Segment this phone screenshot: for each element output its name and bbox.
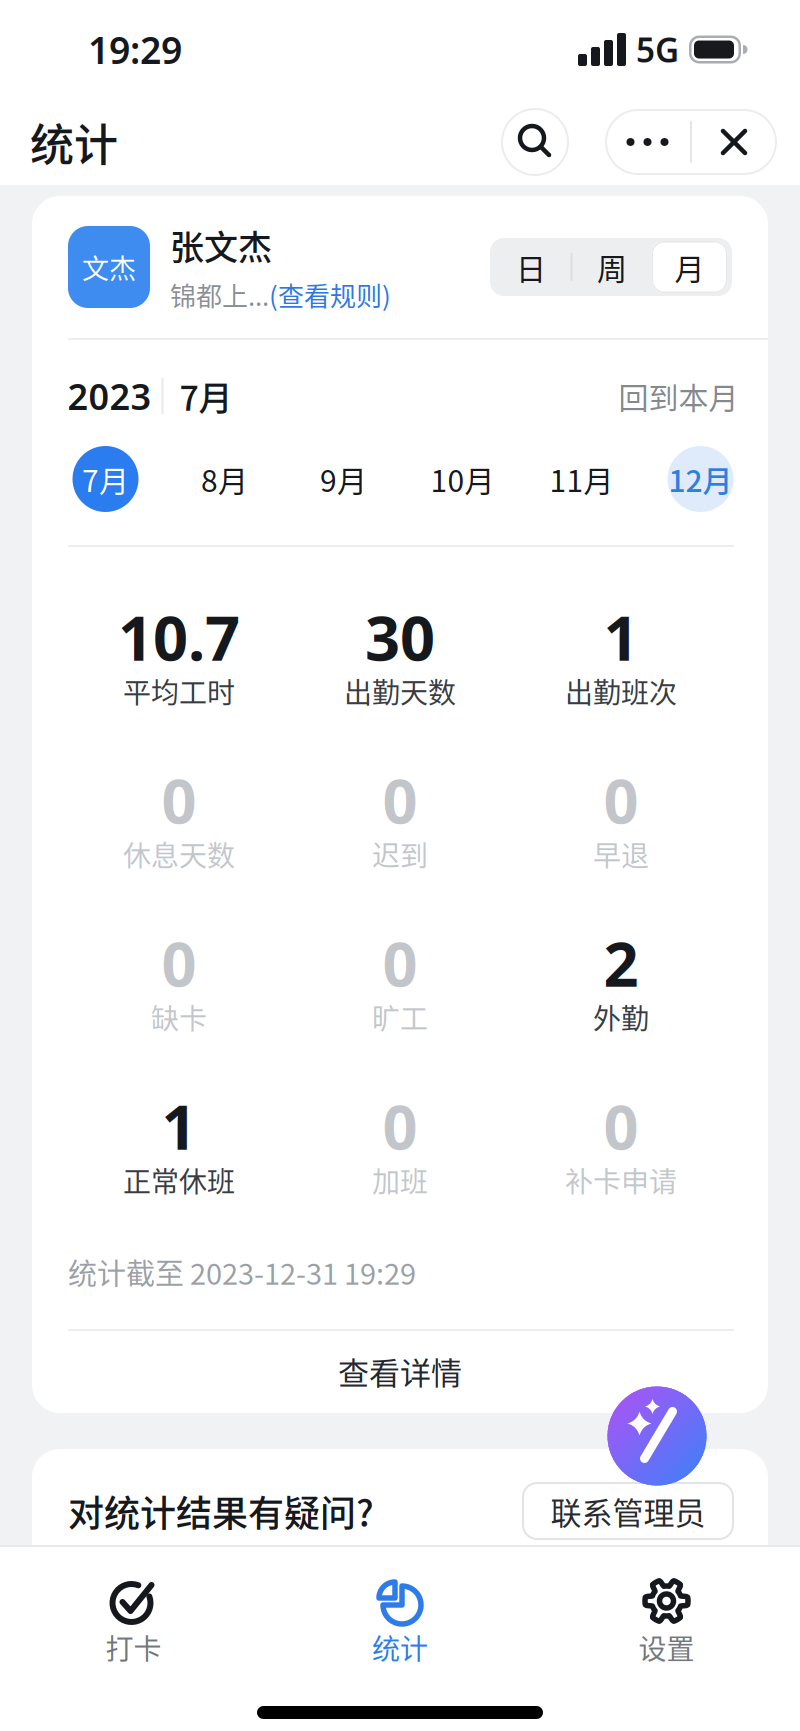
button[interactable]: 回到本月 [618,374,738,418]
button[interactable]: 统计 [266,1547,533,1677]
staticText: 统计 [30,110,118,174]
button[interactable]: (查看规则) [269,276,391,313]
staticText: 打卡 [105,1627,161,1667]
staticText: 2 [603,922,638,1004]
staticText: 8月 [201,457,248,501]
staticText: 外勤 [593,997,649,1037]
staticText: 0 [161,922,196,1004]
staticText: 12月 [668,457,732,501]
staticText: 10月 [430,457,494,501]
staticText: 30 [365,596,435,678]
button[interactable]: 设置 [533,1547,799,1677]
staticText: 9月 [320,457,367,501]
staticText: 出勤班次 [565,671,677,711]
staticText: 0 [603,759,638,841]
button[interactable]: 更多 [605,109,690,175]
button[interactable]: 周 [572,238,651,296]
staticText: 0 [382,1085,417,1167]
staticText: 0 [161,759,196,841]
staticText: 1 [603,596,638,678]
button[interactable]: 联系管理员 [522,1482,734,1540]
staticText: 7月 [82,457,129,501]
staticText: 休息天数 [123,834,235,874]
button[interactable]: 智能助理 [607,1386,706,1485]
button[interactable]: 11月 [548,446,614,512]
staticText: 0 [603,1085,638,1167]
staticText: 锦都上... [170,276,269,313]
staticText: 月 [674,245,704,289]
staticText: 0 [382,759,417,841]
staticText: 2023 [67,372,151,420]
staticText: 11月 [549,457,613,501]
staticText: 对统计结果有疑问? [68,1485,374,1537]
button[interactable]: 关闭 [692,109,777,175]
staticText: 1 [161,1085,196,1167]
button[interactable]: 10月 [429,446,495,512]
button[interactable]: 查看详情 [338,1331,462,1402]
staticText: 回到本月 [618,374,738,418]
staticText: 联系管理员 [550,1489,705,1533]
button[interactable]: 8月 [191,446,257,512]
button[interactable]: 9月 [310,446,376,512]
button[interactable]: 搜索 [501,108,569,176]
staticText: 旷工 [372,997,428,1037]
staticText: 统计 [372,1627,428,1667]
staticText: 平均工时 [123,671,235,711]
staticText: 周 [597,245,627,289]
staticText: 迟到 [372,834,428,874]
staticText: 早退 [593,834,649,874]
staticText: 7月 [179,371,232,421]
staticText: (查看规则) [269,276,391,313]
staticText: 查看详情 [338,1349,462,1393]
staticText: 19:29 [88,25,182,74]
button[interactable]: 打卡 [0,1547,266,1677]
button[interactable]: 日 [491,238,570,296]
staticText: 正常休班 [123,1160,235,1200]
staticText: 缺卡 [151,997,207,1037]
staticText: 10.7 [118,596,240,678]
staticText: 文杰 [82,247,136,287]
staticText: 张文杰 [170,221,272,270]
staticText: 统计截至 2023-12-31 19:29 [68,1251,416,1293]
button[interactable]: 7月 [72,446,138,512]
staticText: 0 [382,922,417,1004]
staticText: 加班 [372,1160,428,1200]
staticText: 5G [636,27,679,72]
staticText: 补卡申请 [565,1160,677,1200]
staticText: 出勤天数 [344,671,456,711]
button[interactable]: 月 [651,241,727,293]
button[interactable]: 12月 [667,446,733,512]
staticText: 日 [516,245,546,289]
staticText: 设置 [638,1627,694,1667]
